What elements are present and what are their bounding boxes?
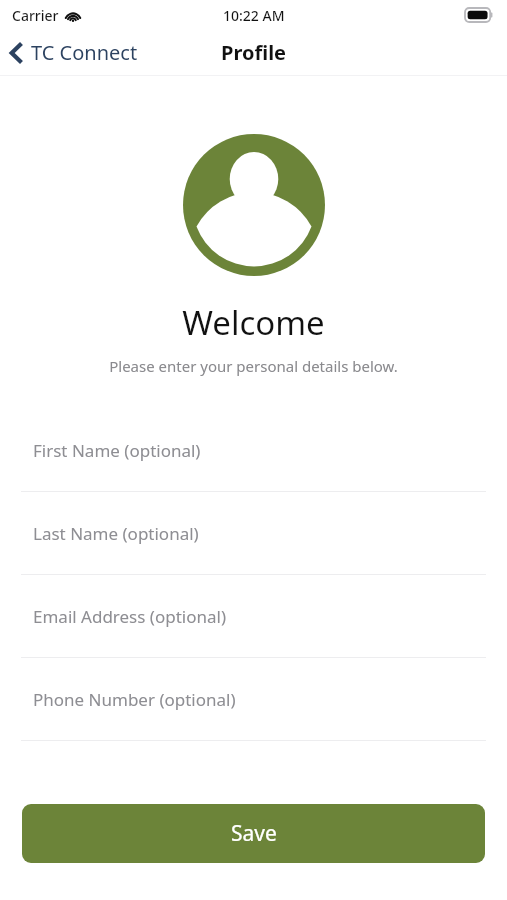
button[interactable]: Phone Number (optional) (0, 658, 507, 741)
staticText: Profile (221, 39, 287, 66)
staticText: First Name (optional) (33, 439, 201, 462)
button[interactable]: Email Address (optional) (0, 575, 507, 658)
staticText: Carrier (12, 6, 59, 25)
button[interactable]: First Name (optional) (0, 409, 507, 492)
staticText: Phone Number (optional) (33, 688, 236, 711)
button[interactable]: TC Connect (0, 35, 148, 70)
staticText: TC Connect (31, 39, 138, 66)
staticText: Email Address (optional) (33, 605, 227, 628)
button[interactable]: Save (22, 804, 485, 863)
staticText: Last Name (optional) (33, 522, 199, 545)
staticText: Please enter your personal details below… (0, 356, 507, 376)
staticText: Welcome (0, 300, 507, 345)
staticText: Save (231, 819, 277, 848)
staticText: 10:22 AM (223, 6, 285, 25)
button[interactable]: Last Name (optional) (0, 492, 507, 575)
